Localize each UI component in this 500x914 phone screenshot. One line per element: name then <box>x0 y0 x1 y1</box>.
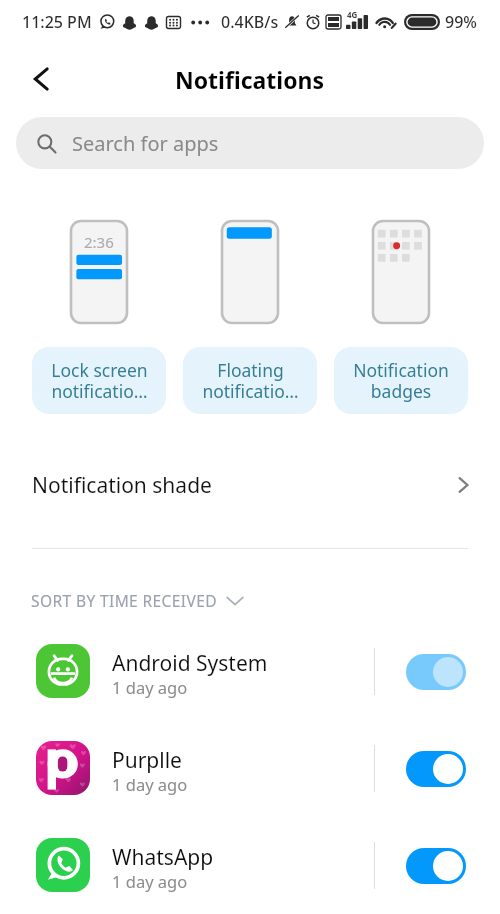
button[interactable]: Purplle <box>0 721 500 816</box>
button[interactable]: WhatsApp <box>0 818 500 913</box>
staticText: 1 day ago <box>112 773 188 795</box>
staticText: Android System <box>112 649 268 678</box>
staticText: Lock screen notificatio… <box>51 358 148 403</box>
staticText: 0.4KB/s <box>221 11 279 33</box>
staticText: 1 day ago <box>112 870 188 892</box>
staticText: 11:25 PM <box>22 11 92 33</box>
staticText: Notification shade <box>32 471 212 500</box>
button[interactable]: Search for apps <box>16 117 484 169</box>
button[interactable]: Toggle notifications for Android System <box>406 654 466 690</box>
staticText: 1 day ago <box>112 676 188 698</box>
staticText: Floating notificatio… <box>202 358 299 403</box>
button[interactable]: Back <box>20 57 64 101</box>
staticText: 2:36 <box>84 232 114 252</box>
button[interactable]: Notification shade <box>0 455 500 515</box>
staticText: Notifications <box>175 64 325 95</box>
staticText: 99% <box>445 11 477 33</box>
button[interactable]: Android System <box>0 624 500 719</box>
staticText: Search for apps <box>72 130 219 157</box>
staticText: Notification badges <box>353 358 449 403</box>
button[interactable]: Toggle notifications for WhatsApp <box>406 848 466 884</box>
staticText: SORT BY TIME RECEIVED <box>31 590 217 611</box>
staticText: Purplle <box>112 746 182 775</box>
button[interactable]: SORT BY TIME RECEIVED <box>31 588 244 612</box>
button[interactable]: Notification badges <box>334 221 468 414</box>
staticText: 4G <box>347 9 358 20</box>
button[interactable]: Toggle notifications for Purplle <box>406 751 466 787</box>
button[interactable]: 2:36 <box>32 221 166 414</box>
button[interactable]: Floating notificatio… <box>183 221 317 414</box>
staticText: WhatsApp <box>112 843 214 872</box>
